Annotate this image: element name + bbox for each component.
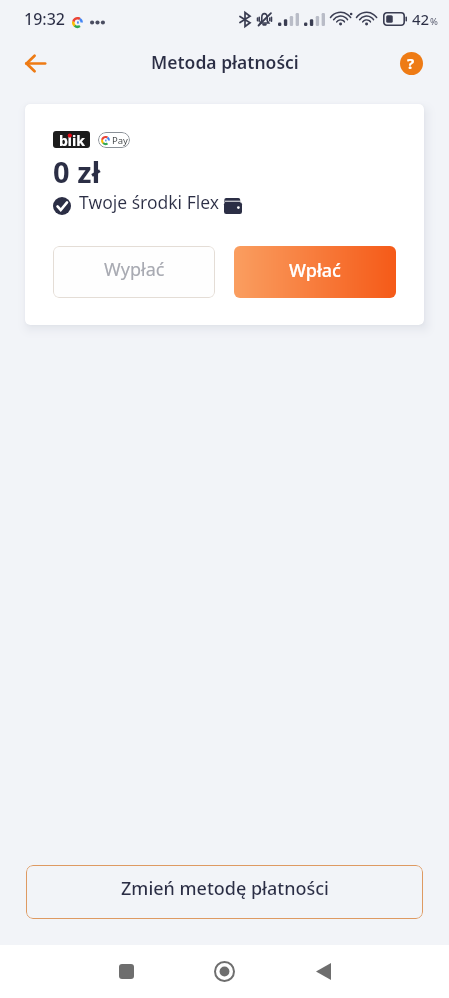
staticText: blik	[59, 131, 85, 148]
button[interactable]: Wpłać	[234, 246, 396, 298]
staticText: Zmień metodę płatności	[121, 876, 329, 901]
staticText: 0 zł	[53, 152, 101, 191]
button[interactable]: Wypłać	[53, 246, 215, 298]
staticText: Twoje środki Flex	[79, 190, 220, 214]
staticText: Metoda płatności	[151, 50, 299, 74]
staticText: 19:32	[24, 8, 65, 30]
button[interactable]: Zmień metodę płatności	[26, 865, 423, 919]
staticText: ?	[407, 53, 415, 73]
button[interactable]: Home	[175, 945, 274, 998]
staticText: Pay	[112, 134, 128, 147]
staticText: 42	[412, 9, 430, 29]
staticText: %	[430, 15, 438, 28]
staticText: Wpłać	[289, 258, 341, 283]
button[interactable]: Recent apps	[77, 945, 175, 998]
button[interactable]: Back	[14, 42, 56, 84]
button[interactable]: Help	[394, 46, 428, 80]
staticText: Wypłać	[104, 257, 165, 282]
button[interactable]: Back	[274, 945, 373, 998]
